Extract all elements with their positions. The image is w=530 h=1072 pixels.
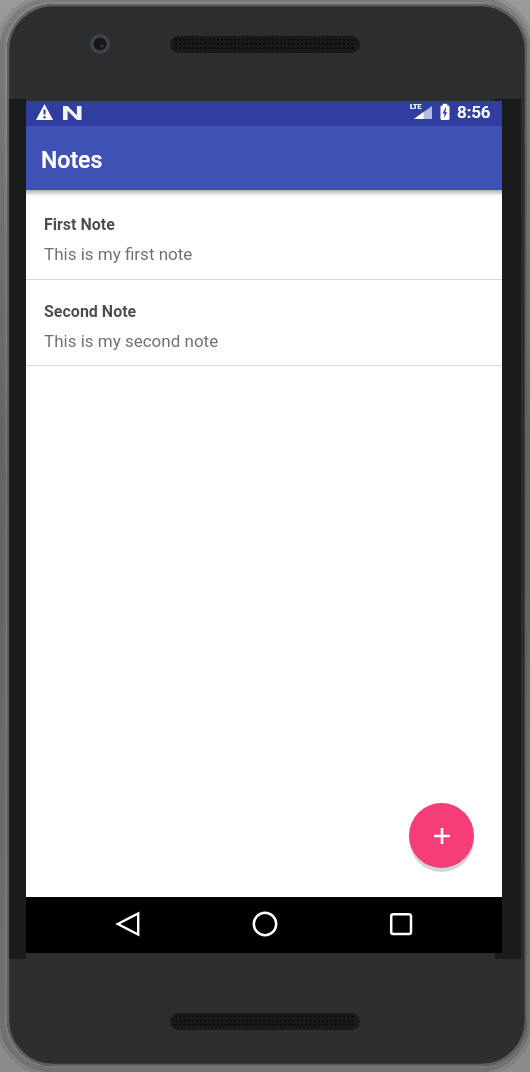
- button[interactable]: [409, 803, 474, 868]
- button[interactable]: [376, 899, 426, 949]
- staticText: 8:56: [457, 102, 491, 122]
- staticText: This is my first note: [44, 244, 193, 264]
- button[interactable]: Second Note: [26, 280, 502, 365]
- staticText: First Note: [44, 215, 115, 234]
- staticText: LTE: [410, 103, 422, 111]
- staticText: This is my second note: [44, 331, 219, 351]
- staticText: Second Note: [44, 302, 137, 321]
- staticText: Notes: [41, 147, 103, 174]
- button[interactable]: [240, 899, 290, 949]
- button[interactable]: First Note: [26, 190, 502, 279]
- button[interactable]: [104, 899, 154, 949]
